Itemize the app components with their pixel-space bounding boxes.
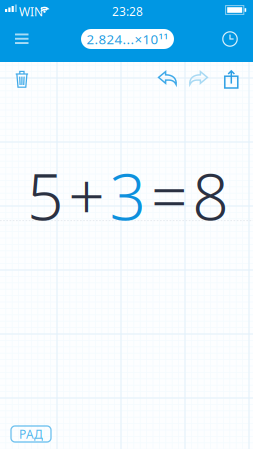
staticText: 2.824...×10¹¹ [86, 30, 168, 48]
button[interactable]: Redo [181, 63, 216, 95]
button[interactable]: Clear [7, 62, 37, 96]
staticText: 3 [110, 153, 147, 238]
staticText: WIN [19, 4, 43, 19]
button[interactable]: 2.824...×10¹¹ [81, 29, 174, 49]
button[interactable]: History [213, 22, 247, 56]
staticText: + [68, 153, 105, 238]
button[interactable]: РАД [11, 426, 51, 442]
button[interactable]: Undo [150, 63, 185, 95]
staticText: 5 [27, 153, 64, 238]
staticText: 8 [192, 153, 229, 238]
button[interactable]: Share [216, 62, 247, 97]
staticText: = [151, 153, 188, 238]
button[interactable]: Menu [4, 22, 39, 55]
staticText: РАД [19, 426, 43, 442]
staticText: 23:28 [112, 3, 143, 19]
